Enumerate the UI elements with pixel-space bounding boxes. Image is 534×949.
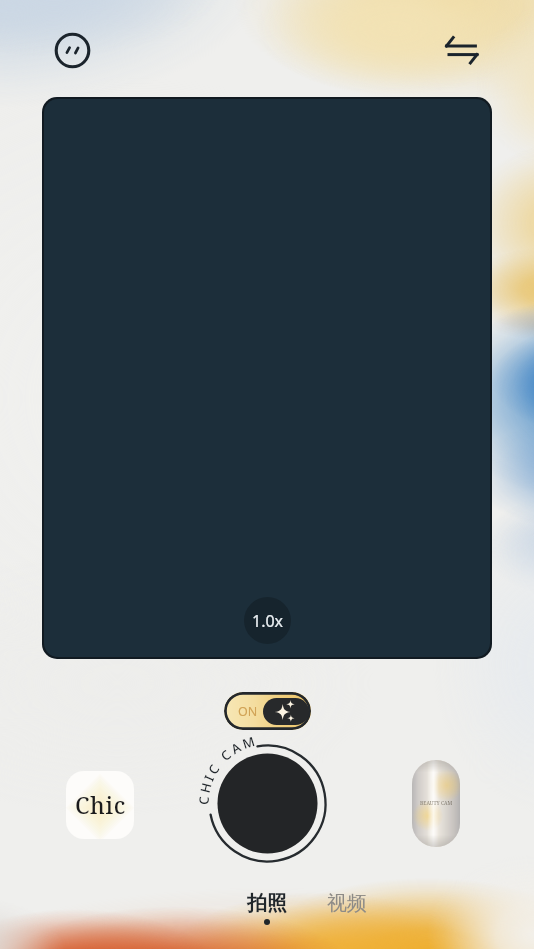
button[interactable]: Lens kit <box>412 760 460 847</box>
staticText: 视频 <box>327 891 367 916</box>
button[interactable]: AI enhancement on <box>224 692 311 730</box>
button[interactable]: 拍照 <box>241 888 293 919</box>
button[interactable]: Camera preview <box>42 97 492 659</box>
button[interactable]: Last photo <box>66 771 134 839</box>
button[interactable]: Filters <box>51 29 94 72</box>
button[interactable]: Switch camera <box>438 29 484 75</box>
staticText: 1.0x <box>252 610 284 632</box>
staticText: 拍照 <box>247 891 287 916</box>
staticText: BEAUTY CAM <box>420 800 453 807</box>
staticText: Chic <box>75 789 126 820</box>
button[interactable]: Shutter <box>203 739 332 868</box>
button[interactable]: 1.0x <box>244 597 291 644</box>
button[interactable]: 视频 <box>321 888 373 919</box>
staticText: ON <box>238 703 258 720</box>
